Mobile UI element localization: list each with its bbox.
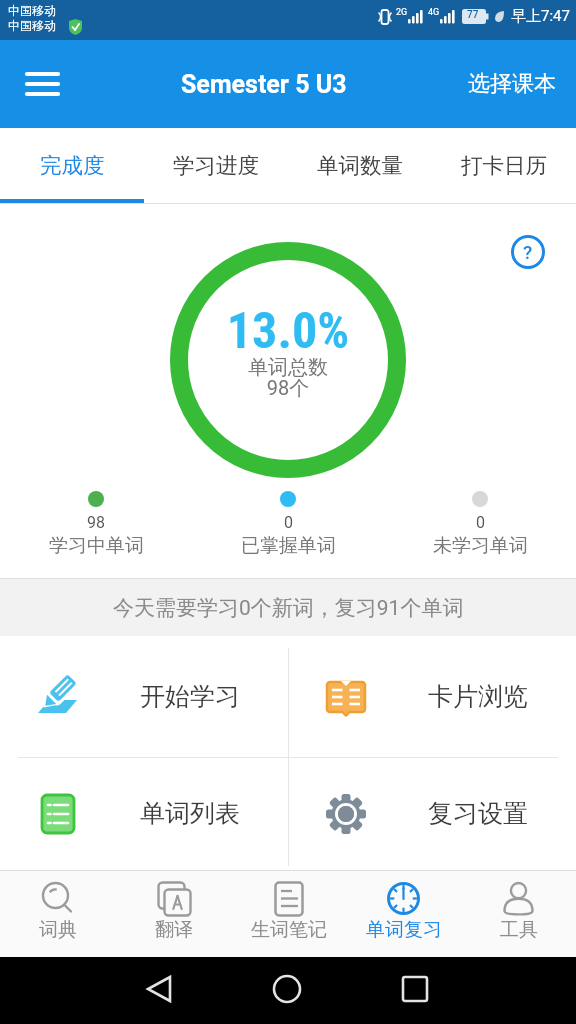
staticText: 中国移动 [8,18,56,33]
button[interactable]: 复习设置 [288,757,576,870]
staticText: 卡片浏览 [428,681,528,712]
staticText: 复习设置 [428,798,528,829]
button[interactable]: 工具 [461,871,576,957]
staticText: 已掌握单词 [241,534,336,558]
staticText: 98个 [0,376,576,401]
button[interactable]: 开始学习 [0,636,288,757]
staticText: 单词数量 [317,152,403,179]
staticText: 0 [476,513,485,532]
button[interactable] [192,957,384,1024]
button[interactable] [0,957,192,1024]
button[interactable]: 完成度 [0,128,144,203]
button[interactable]: 单词数量 [288,128,432,203]
button[interactable] [27,72,58,96]
staticText: ? [523,241,533,263]
staticText: 单词总数 [0,355,576,380]
button[interactable]: 单词复习 [346,871,461,957]
staticText: 开始学习 [140,681,240,712]
button[interactable]: 选择课本 [468,70,576,98]
staticText: 学习中单词 [49,534,144,558]
staticText: 打卡日历 [461,152,547,179]
button[interactable]: 单词列表 [0,757,288,870]
button[interactable] [384,957,576,1024]
button[interactable]: ? [511,235,545,269]
button[interactable]: 卡片浏览 [288,636,576,757]
staticText: 工具 [500,918,538,942]
staticText: 单词列表 [140,798,240,829]
staticText: 98 [87,513,105,532]
staticText: 学习进度 [173,152,259,179]
staticText: 未学习单词 [433,534,528,558]
button[interactable]: 生词笔记 [231,871,346,957]
staticText: 单词复习 [366,918,442,942]
staticText: 翻译 [155,918,193,942]
staticText: 4G [428,7,440,18]
staticText: 0 [284,513,293,532]
button[interactable]: 词典 [0,871,116,957]
button[interactable]: 打卡日历 [432,128,576,203]
staticText: 中国移动 [8,3,56,18]
button[interactable]: 翻译 [116,871,231,957]
staticText: 完成度 [40,152,105,179]
staticText: 词典 [39,918,77,942]
staticText: 13.0% [0,302,576,361]
staticText: Semester 5 U3 [181,70,347,99]
staticText: 77 [467,9,479,21]
staticText: 2G [396,7,408,18]
staticText: 生词笔记 [251,918,327,942]
staticText: 选择课本 [468,70,556,98]
staticText: 早上7:47 [511,7,570,26]
button[interactable]: 学习进度 [144,128,288,203]
staticText: 今天需要学习0个新词，复习91个单词 [113,595,464,621]
